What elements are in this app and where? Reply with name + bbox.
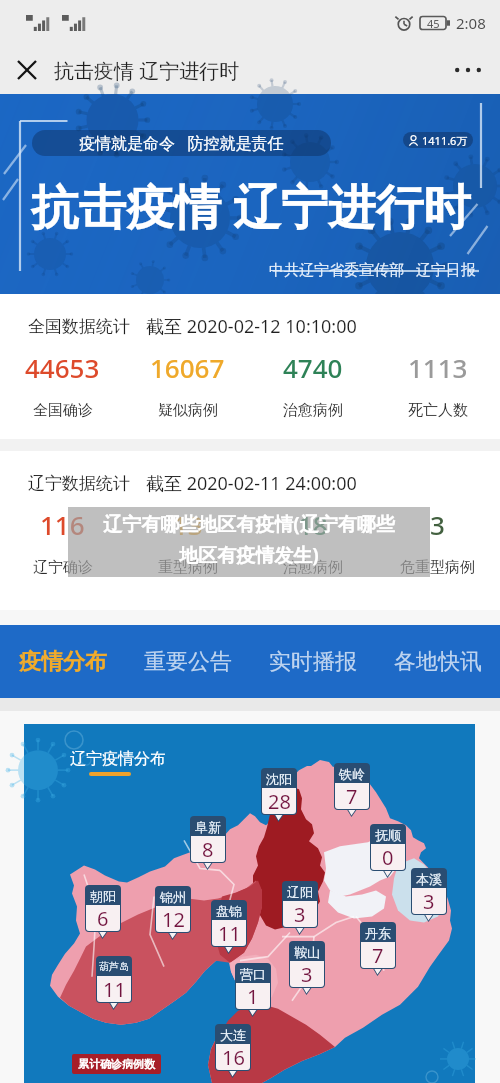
staticText: 1411.6万 — [422, 133, 468, 148]
staticText: 全国数据统计 — [28, 316, 130, 337]
staticText: 重型病例 — [158, 558, 218, 577]
staticText: 7 — [346, 783, 358, 809]
staticText: 危重型病例 — [400, 558, 475, 577]
staticText: 0 — [382, 844, 394, 870]
staticText: 辽宁疫情分布 — [70, 749, 166, 769]
staticText: 16 — [222, 1044, 245, 1070]
staticText: 营口 — [240, 966, 266, 982]
staticText: 11 — [103, 976, 126, 1002]
staticText: 3 — [301, 961, 313, 987]
staticText: 锦州 — [160, 889, 186, 905]
staticText: 死亡人数 — [408, 401, 468, 420]
staticText: 3 — [423, 888, 435, 914]
staticText: 本溪 — [416, 871, 442, 887]
staticText: 18 — [298, 507, 328, 542]
staticText: 累计确诊病例数 — [78, 1057, 155, 1071]
staticText: 丹东 — [365, 925, 391, 941]
staticText: 各地快讯 — [394, 648, 482, 676]
staticText: 阜新 — [195, 819, 221, 835]
staticText: 截至 2020-02-12 10:10:00 — [146, 314, 357, 339]
button[interactable]: 各地快讯 — [375, 625, 500, 698]
button[interactable]: 实时播报 — [250, 625, 375, 698]
staticText: 16067 — [150, 350, 225, 385]
staticText: 2:08 — [456, 13, 486, 33]
button[interactable]: 疫情分布 — [0, 625, 125, 698]
staticText: 盘锦 — [216, 903, 242, 919]
staticText: 3 — [294, 901, 306, 927]
staticText: 7 — [372, 942, 384, 968]
staticText: 重要公告 — [144, 648, 232, 676]
staticText: 抚顺 — [375, 827, 401, 843]
staticText: 辽宁确诊 — [33, 558, 93, 577]
staticText: 中共辽宁省委宣传部 辽宁日报 — [269, 259, 476, 279]
staticText: 铁岭 — [339, 766, 365, 782]
button[interactable]: 重要公告 — [125, 625, 250, 698]
staticText: 治愈病例 — [283, 401, 343, 420]
staticText: 全国确诊 — [33, 401, 93, 420]
button[interactable]: Close — [10, 53, 44, 87]
staticText: 辽宁有哪些地区有疫情(辽宁有哪些 地区有疫情发生) — [103, 511, 395, 567]
staticText: 辽阳 — [287, 884, 313, 900]
staticText: 11 — [218, 920, 241, 946]
staticText: 6 — [97, 905, 109, 931]
staticText: 疫情就是命令 防控就是责任 — [79, 132, 284, 154]
staticText: 截至 2020-02-11 24:00:00 — [146, 471, 357, 496]
staticText: 1 — [247, 983, 259, 1009]
staticText: 鞍山 — [294, 944, 320, 960]
staticText: 45 — [427, 16, 440, 31]
staticText: 治愈病例 — [283, 558, 343, 577]
staticText: 实时播报 — [269, 648, 357, 676]
staticText: 28 — [268, 788, 291, 814]
staticText: 抗击疫情 辽宁进行时 — [54, 57, 240, 84]
staticText: 沈阳 — [266, 771, 292, 787]
button[interactable]: More options — [450, 52, 486, 88]
staticText: 8 — [202, 836, 214, 862]
staticText: 13 — [173, 507, 203, 542]
staticText: 4740 — [283, 350, 343, 385]
staticText: 抗击疫情 辽宁进行时 — [31, 173, 471, 238]
staticText: 疫情分布 — [19, 648, 107, 676]
staticText: 葫芦岛 — [99, 960, 129, 973]
staticText: 朝阳 — [90, 888, 116, 904]
staticText: 3 — [430, 507, 445, 542]
staticText: 116 — [40, 507, 85, 542]
staticText: 44653 — [25, 350, 100, 385]
staticText: 疑似病例 — [158, 401, 218, 420]
staticText: 辽宁数据统计 — [28, 473, 130, 494]
staticText: 1113 — [408, 350, 468, 385]
staticText: 12 — [162, 906, 185, 932]
staticText: 大连 — [220, 1027, 246, 1043]
